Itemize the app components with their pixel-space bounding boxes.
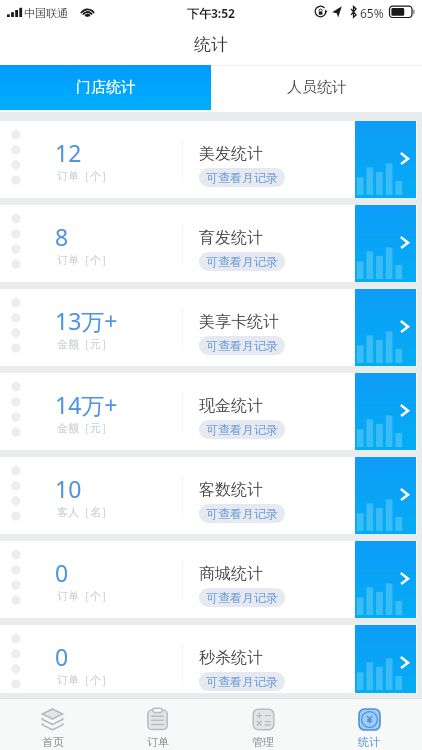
staticText: 现金统计 [199,396,263,416]
staticText: 首页 [42,735,64,749]
staticText: 可查看月记录 [206,254,278,269]
button[interactable]: 门店统计 [0,65,211,110]
button[interactable]: 首页 [0,699,105,750]
other: 管理 [252,708,275,731]
staticText: 14万+ [55,389,118,420]
staticText: 订单［个］ [57,673,112,687]
staticText: 商城统计 [199,564,263,584]
button[interactable]: 现金统计 详情 [355,373,416,450]
button[interactable]: 12 [0,121,422,198]
staticText: 订单［个］ [57,589,112,603]
other: 统计 [358,708,381,731]
button[interactable]: 商城统计 详情 [355,541,416,618]
staticText: 0 [55,641,69,672]
staticText: 订单［个］ [57,253,112,267]
button[interactable]: 14万+ [0,373,422,450]
button[interactable]: 13万+ [0,289,422,366]
staticText: 可查看月记录 [206,338,278,353]
staticText: 0 [55,557,69,588]
button[interactable]: 8 [0,205,422,282]
staticText: 客人［名］ [57,505,112,519]
button[interactable]: 0 [0,625,422,693]
button[interactable]: 秒杀统计 详情 [355,625,416,693]
button[interactable]: 订单 [105,699,210,750]
button[interactable]: 统计 [316,699,422,750]
staticText: 美享卡统计 [199,312,279,332]
staticText: 统计 [358,735,380,749]
staticText: 人员统计 [287,78,347,97]
staticText: 美发统计 [199,144,263,164]
button[interactable]: 10 [0,457,422,534]
staticText: 订单 [147,735,169,749]
staticText: 可查看月记录 [206,422,278,437]
button[interactable]: 管理 [210,699,316,750]
staticText: 可查看月记录 [206,590,278,605]
staticText: 订单［个］ [57,169,112,183]
button[interactable]: 客数统计 详情 [355,457,416,534]
staticText: 13万+ [55,305,118,336]
staticText: 中国联通 [24,6,68,20]
staticText: 金额［元］ [57,337,112,351]
button[interactable]: 美享卡统计 详情 [355,289,416,366]
button[interactable]: 人员统计 [211,65,422,110]
staticText: 管理 [252,735,274,749]
staticText: 可查看月记录 [206,506,278,521]
staticText: 8 [55,221,69,252]
other: 订单 [146,708,169,731]
staticText: 秒杀统计 [199,648,263,668]
button[interactable]: 美发统计 详情 [355,121,416,198]
staticText: 育发统计 [199,228,263,248]
staticText: 客数统计 [199,480,263,500]
other: 首页 [41,708,64,731]
staticText: 可查看月记录 [206,170,278,185]
staticText: 下午3:52 [187,5,235,21]
staticText: 可查看月记录 [206,674,278,689]
staticText: 金额［元］ [57,421,112,435]
staticText: 65% [360,5,384,21]
staticText: 10 [55,473,82,504]
button[interactable]: 育发统计 详情 [355,205,416,282]
staticText: 12 [55,137,82,168]
button[interactable]: 0 [0,541,422,618]
staticText: 统计 [194,34,228,55]
staticText: 门店统计 [76,78,136,97]
